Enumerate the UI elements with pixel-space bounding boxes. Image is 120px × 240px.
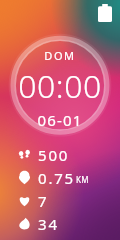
button[interactable]: Distance [17,168,90,187]
staticText: 0.75 [38,168,75,187]
staticText: 7 [38,191,49,210]
staticText: 00:00 [18,64,102,108]
button[interactable]: Battery [98,4,112,22]
button[interactable]: Calories [17,214,59,233]
button[interactable]: DOM [0,48,120,130]
staticText: DOM [44,48,76,63]
staticText: 500 [38,145,70,164]
staticText: KM [76,174,90,185]
staticText: 34 [38,214,59,233]
button[interactable]: Steps [17,145,70,164]
button[interactable]: Heart rate [17,191,49,210]
staticText: 06-01 [37,110,83,130]
